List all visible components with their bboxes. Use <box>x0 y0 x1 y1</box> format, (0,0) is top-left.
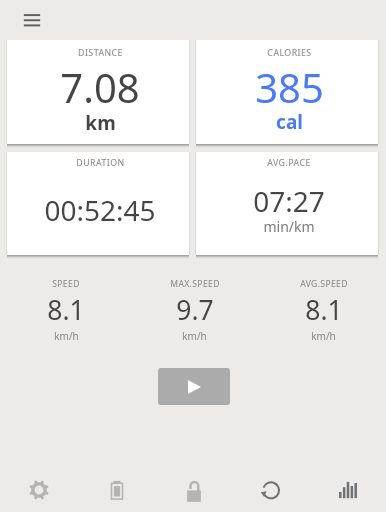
button[interactable]: AVG.SPEED <box>257 278 386 348</box>
staticText: cal <box>276 109 303 135</box>
button[interactable] <box>196 152 378 255</box>
staticText: 9.7 <box>176 292 214 328</box>
button[interactable]: Menu <box>18 6 46 34</box>
staticText: 385 <box>255 60 324 114</box>
button[interactable] <box>7 152 189 255</box>
button[interactable]: Battery <box>78 468 155 512</box>
staticText: km <box>85 110 116 136</box>
staticText: km/h <box>311 329 336 343</box>
button[interactable] <box>196 40 378 144</box>
button[interactable]: Statistics <box>309 468 386 512</box>
staticText: DURATION <box>76 157 125 169</box>
button[interactable]: Settings <box>0 468 78 512</box>
staticText: min/km <box>263 217 315 236</box>
staticText: 8.1 <box>47 292 85 328</box>
staticText: DISTANCE <box>78 47 123 59</box>
staticText: 8.1 <box>305 292 343 328</box>
staticText: AVG.SPEED <box>300 278 348 290</box>
staticText: MAX.SPEED <box>170 278 220 290</box>
staticText: 00:52:45 <box>44 191 156 229</box>
staticText: SPEED <box>52 278 80 290</box>
button[interactable]: MAX.SPEED <box>128 278 257 348</box>
staticText: 07:27 <box>253 182 325 220</box>
staticText: km/h <box>54 329 79 343</box>
staticText: AVG.PACE <box>267 157 311 169</box>
button[interactable]: Refresh <box>232 468 309 512</box>
button[interactable]: Lock <box>155 468 232 512</box>
staticText: km/h <box>182 329 207 343</box>
staticText: 7.08 <box>60 60 140 114</box>
button[interactable] <box>7 40 189 144</box>
button[interactable]: Start <box>158 368 230 405</box>
button[interactable]: SPEED <box>0 278 128 348</box>
staticText: CALORIES <box>267 47 312 59</box>
